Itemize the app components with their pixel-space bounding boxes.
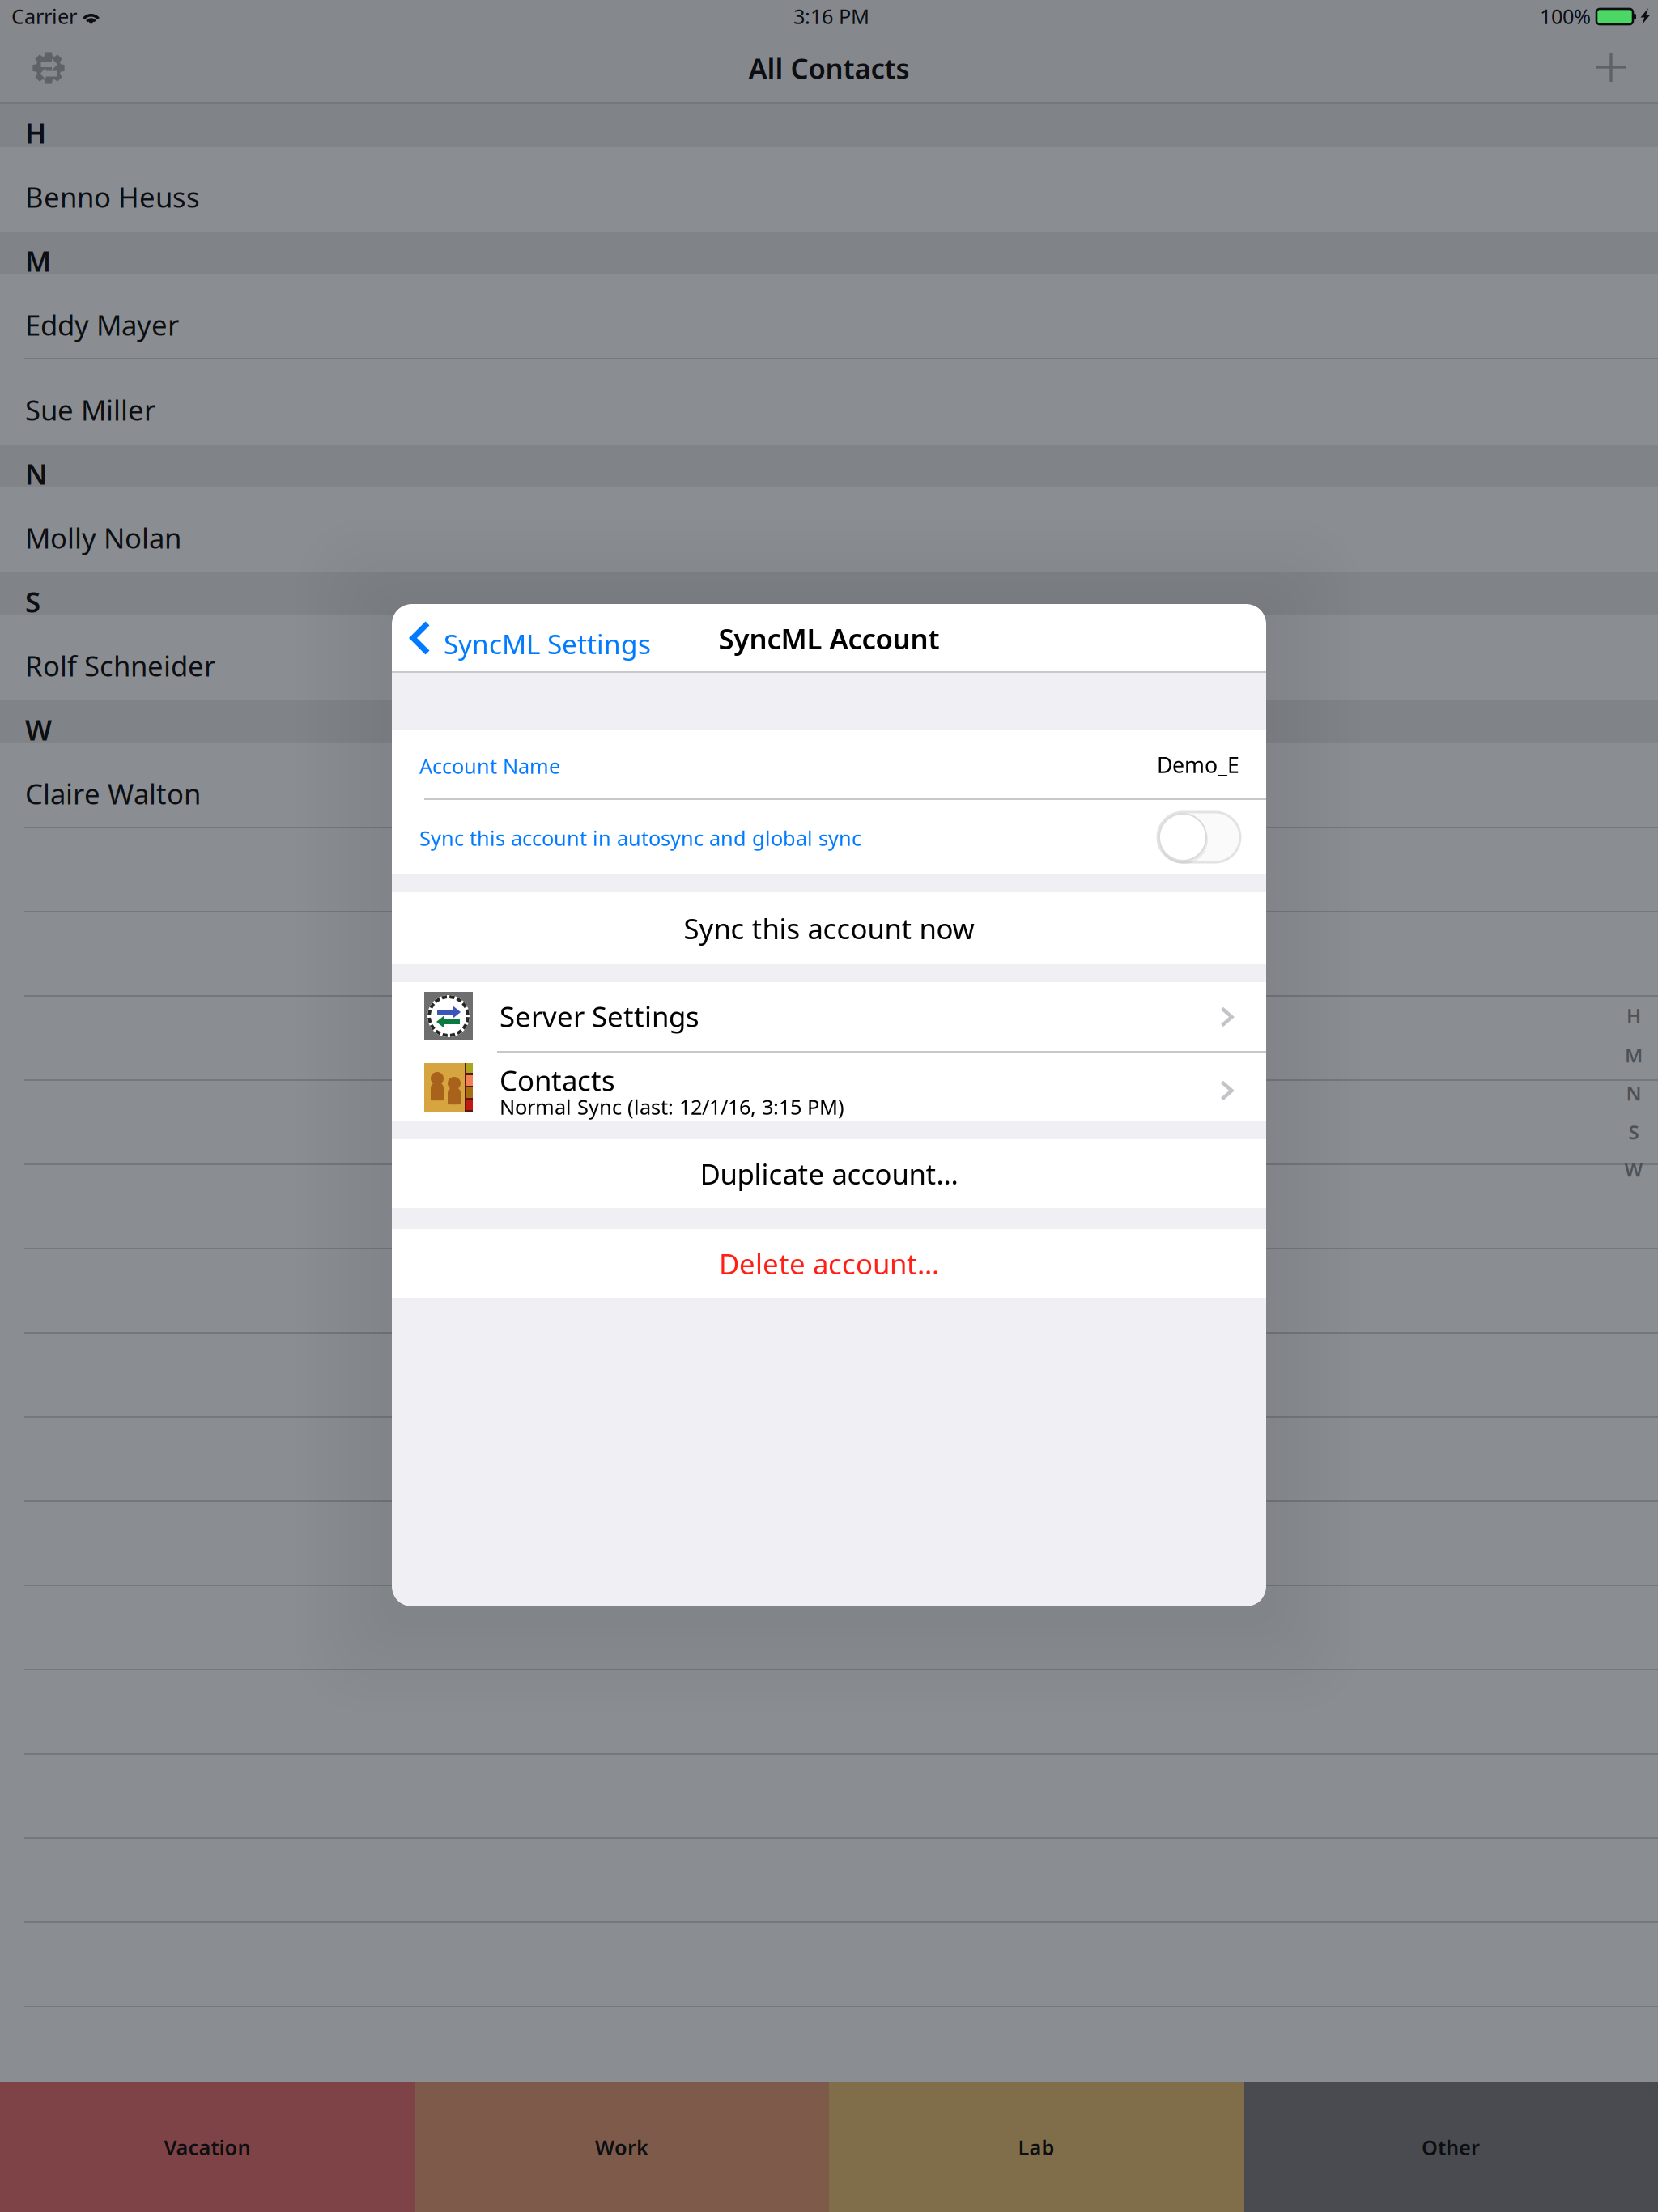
button[interactable]: Rolf Schneider — [0, 615, 1658, 700]
staticText: Eddy Mayer — [25, 306, 179, 343]
button[interactable]: Sync this account in autosync and global… — [1158, 812, 1240, 862]
staticText: N — [1626, 1080, 1641, 1106]
button[interactable]: Delete account... — [392, 1229, 1266, 1298]
button[interactable]: Molly Nolan — [0, 487, 1658, 572]
staticText: SyncML Settings — [444, 626, 651, 662]
staticText: H — [25, 114, 46, 151]
staticText: Sue Miller — [25, 391, 155, 428]
button[interactable]: Account Name — [392, 730, 1266, 800]
button[interactable]: Claire Walton — [0, 743, 1658, 828]
staticText: Other — [1422, 2134, 1480, 2161]
button[interactable]: Duplicate account... — [392, 1139, 1266, 1208]
staticText: Sync this account now — [684, 910, 974, 947]
staticText: 3:16 PM — [793, 3, 869, 30]
staticText: M — [1625, 1042, 1643, 1068]
staticText: Benno Heuss — [25, 178, 200, 215]
staticText: Account Name — [419, 752, 560, 779]
button[interactable]: Eddy Mayer — [0, 274, 1658, 359]
button[interactable]: Contacts — [392, 1053, 1266, 1121]
staticText: Duplicate account... — [700, 1155, 958, 1192]
staticText: Normal Sync (last: 12/1/16, 3:15 PM) — [500, 1093, 844, 1120]
button[interactable]: Vacation — [0, 2082, 414, 2212]
button[interactable]: SyncML Settings — [4, 32, 93, 104]
button[interactable]: Other — [1243, 2082, 1658, 2212]
button[interactable]: Benno Heuss — [0, 147, 1658, 232]
staticText: Molly Nolan — [25, 519, 181, 556]
staticText: Claire Walton — [25, 775, 201, 812]
staticText: Carrier — [11, 3, 77, 30]
staticText: SyncML Account — [718, 620, 940, 657]
staticText: S — [1628, 1119, 1639, 1145]
staticText: M — [25, 242, 51, 279]
button[interactable]: Lab — [829, 2082, 1243, 2212]
staticText: Server Settings — [500, 998, 699, 1035]
button[interactable]: Sue Miller — [0, 359, 1658, 445]
staticText: Rolf Schneider — [25, 647, 215, 684]
button[interactable]: Add contact — [1567, 32, 1656, 103]
staticText: Contacts — [500, 1061, 615, 1099]
staticText: H — [1626, 1002, 1641, 1028]
staticText: All Contacts — [748, 49, 910, 87]
staticText: Vacation — [164, 2134, 251, 2161]
staticText: Work — [595, 2134, 648, 2161]
staticText: Sync this account in autosync and global… — [419, 824, 861, 851]
staticText: W — [1624, 1156, 1643, 1182]
staticText: 100% — [1540, 3, 1591, 30]
button[interactable]: SyncML Settings — [392, 604, 635, 673]
staticText: Demo_E — [1157, 750, 1239, 779]
button[interactable]: Server Settings — [392, 982, 1266, 1053]
staticText: N — [25, 455, 47, 492]
staticText: Lab — [1018, 2134, 1054, 2161]
staticText: Delete account... — [719, 1245, 939, 1282]
button[interactable]: Sync this account now — [392, 892, 1266, 964]
staticText: W — [25, 711, 52, 748]
button[interactable]: Work — [414, 2082, 829, 2212]
staticText: S — [25, 583, 40, 620]
